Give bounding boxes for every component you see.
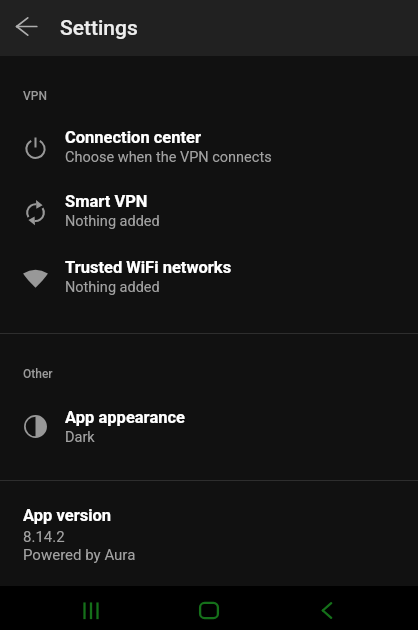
staticText: Nothing added <box>65 279 160 296</box>
button[interactable]: Connection center <box>0 119 418 175</box>
staticText: Trusted WiFi networks <box>65 258 232 277</box>
staticText: App appearance <box>65 408 185 427</box>
staticText: Other <box>23 367 53 381</box>
staticText: Dark <box>65 429 95 446</box>
staticText: 8.14.2 <box>23 528 65 546</box>
button[interactable]: App appearance <box>0 399 418 455</box>
button[interactable]: Trusted WiFi networks <box>0 249 418 305</box>
staticText: Settings <box>60 16 138 41</box>
button[interactable]: Home <box>180 590 238 630</box>
button[interactable]: Back <box>6 6 46 46</box>
staticText: Powered by Aura <box>23 546 136 564</box>
staticText: App version <box>23 506 112 525</box>
staticText: Choose when the VPN connects <box>65 149 272 166</box>
button[interactable]: App version <box>0 481 418 580</box>
staticText: Connection center <box>65 128 202 147</box>
button[interactable]: Back <box>298 590 356 630</box>
button[interactable]: Recent apps <box>62 590 120 630</box>
staticText: VPN <box>23 89 47 103</box>
button[interactable]: Smart VPN <box>0 183 418 239</box>
staticText: Smart VPN <box>65 192 148 211</box>
staticText: Nothing added <box>65 213 160 230</box>
